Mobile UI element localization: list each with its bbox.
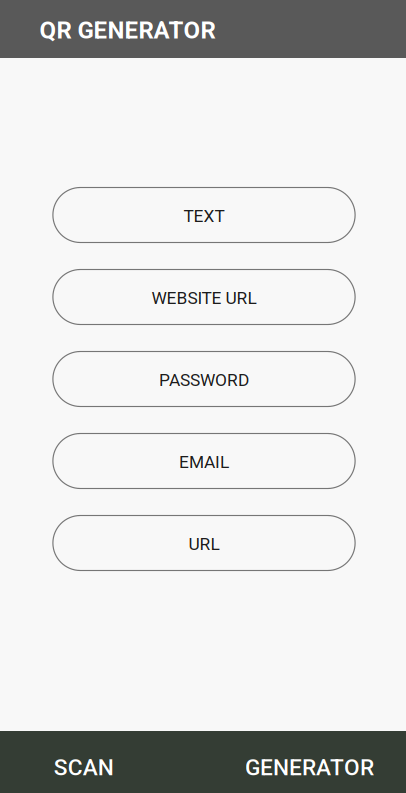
staticText: TEXT: [183, 206, 224, 226]
staticText: QR GENERATOR: [40, 16, 216, 44]
button[interactable]: PASSWORD: [53, 351, 355, 406]
button[interactable]: EMAIL: [53, 433, 355, 488]
button[interactable]: SCAN: [18, 742, 149, 793]
staticText: SCAN: [54, 754, 114, 781]
button[interactable]: TEXT: [53, 187, 355, 242]
staticText: EMAIL: [179, 452, 229, 472]
staticText: URL: [188, 534, 219, 554]
staticText: GENERATOR: [245, 754, 374, 781]
button[interactable]: WEBSITE URL: [53, 269, 355, 324]
staticText: WEBSITE URL: [151, 288, 256, 308]
button[interactable]: GENERATOR: [221, 742, 399, 793]
staticText: PASSWORD: [159, 370, 249, 390]
button[interactable]: URL: [53, 515, 355, 570]
